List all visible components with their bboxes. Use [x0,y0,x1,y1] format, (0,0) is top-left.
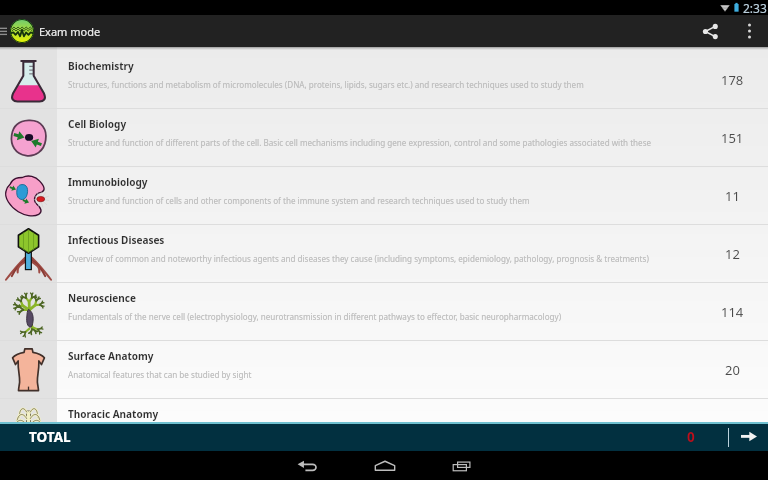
staticText: 178 [721,71,744,89]
staticText: Surface Anatomy [68,349,154,363]
button[interactable]: Biochemistry [0,51,768,109]
button[interactable]: Neuroscience [0,283,768,341]
staticText: Overview of common and noteworthy infect… [68,253,649,264]
staticText: Infectious Diseases [68,233,165,247]
staticText: TOTAL [29,428,71,446]
staticText: Immunobiology [68,175,148,189]
button[interactable]: Immunobiology [0,167,768,225]
staticText: Exam mode [39,24,101,39]
button[interactable]: Thoracic Anatomy [0,399,768,457]
staticText: Neuroscience [68,291,136,305]
staticText: Structure and function of different part… [68,137,652,148]
button[interactable]: Surface Anatomy [0,341,768,399]
staticText: Structure and function of cells and othe… [68,195,530,206]
button[interactable]: Cell Biology [0,109,768,167]
button[interactable]: More options [731,15,768,47]
staticText: 151 [721,129,744,147]
staticText: Structures, functions and metabolism of … [68,79,584,90]
staticText: 12 [725,245,740,263]
button[interactable]: Open navigation drawer [0,15,10,47]
staticText: 0 [687,428,695,446]
button[interactable]: Recent apps [423,451,500,480]
button[interactable]: Share [689,15,731,47]
staticText: 2:33 [743,0,767,15]
staticText: Thoracic Anatomy [68,407,159,421]
button[interactable]: Next [729,424,768,451]
button[interactable]: Back [269,451,346,480]
button[interactable]: Infectious Diseases [0,225,768,283]
staticText: 20 [725,361,740,379]
staticText: Anatomical features that can be studied … [68,369,252,380]
staticText: Cell Biology [68,117,127,131]
staticText: 11 [725,187,740,205]
staticText: Fundamentals of the nerve cell (electrop… [68,311,562,322]
staticText: 114 [721,303,744,321]
button[interactable]: Home [346,451,423,480]
staticText: Biochemistry [68,59,134,73]
